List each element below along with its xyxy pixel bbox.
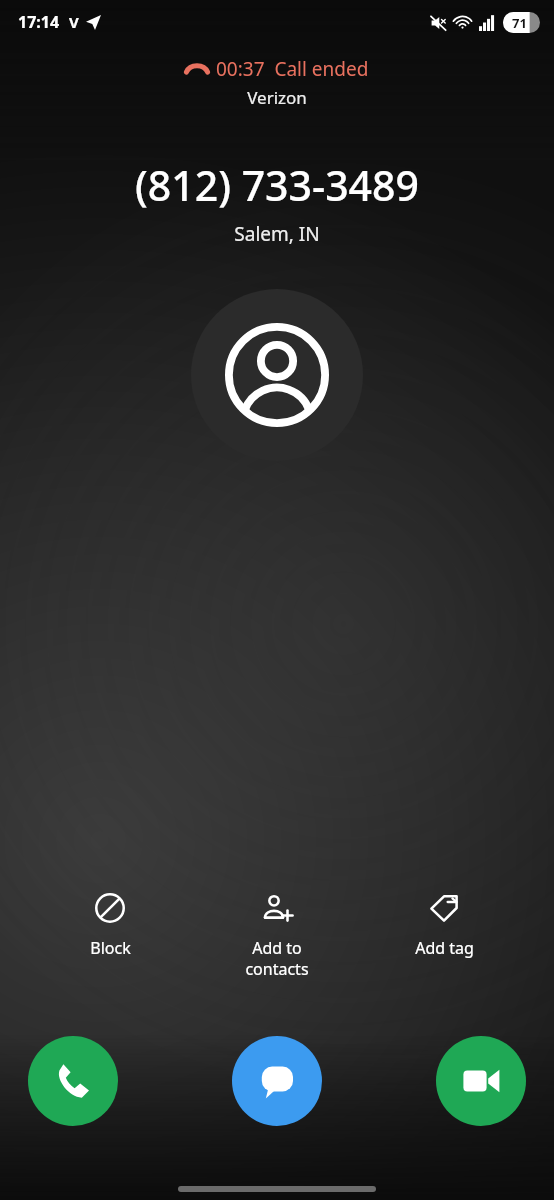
button[interactable]: Call xyxy=(28,1036,118,1126)
staticText: 71 xyxy=(512,14,527,32)
staticText: Salem, IN xyxy=(0,221,554,247)
staticText: 00:37 Call ended xyxy=(216,56,369,82)
staticText: V xyxy=(69,12,79,32)
staticText: Verizon xyxy=(0,86,554,109)
button[interactable]: Block xyxy=(35,889,185,963)
button[interactable]: Add tag xyxy=(369,889,519,963)
button[interactable]: Contact photo xyxy=(191,289,363,461)
button[interactable]: Video call xyxy=(436,1036,526,1126)
staticText: Add tag xyxy=(415,937,474,959)
staticText: 17:14 xyxy=(18,11,60,33)
staticText: Block xyxy=(90,937,131,959)
staticText: Add to contacts xyxy=(245,937,309,980)
button[interactable]: Add to contacts xyxy=(202,889,352,984)
staticText: (812) 733-3489 xyxy=(0,157,554,213)
button[interactable]: Message xyxy=(232,1036,322,1126)
